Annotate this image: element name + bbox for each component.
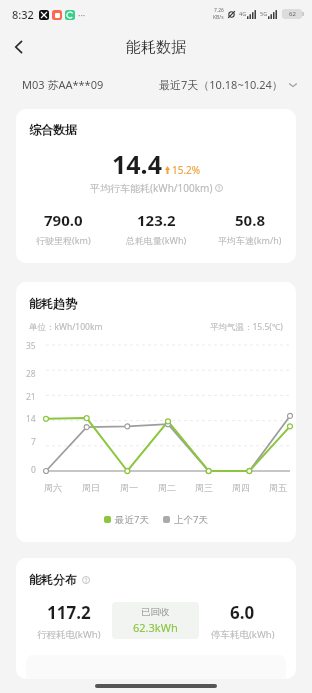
- staticText: 5G: [260, 10, 268, 17]
- staticText: 已回收: [141, 606, 170, 618]
- staticText: 35: [26, 340, 36, 352]
- button[interactable]: 最近7天（10.18~10.24）: [159, 77, 298, 92]
- staticText: 周二: [158, 482, 176, 493]
- staticText: 4G: [239, 10, 247, 17]
- button[interactable]: M03 苏AA***09: [22, 77, 104, 92]
- staticText: 能耗数据: [126, 38, 186, 57]
- staticText: 28: [26, 368, 36, 380]
- staticText: 周五: [269, 482, 287, 493]
- staticText: 能耗趋势: [29, 296, 77, 311]
- staticText: 单位：kWh/100km: [29, 321, 103, 333]
- staticText: 50.8: [235, 210, 265, 230]
- staticText: 7: [31, 436, 36, 448]
- staticText: 最近7天（10.18~10.24）: [159, 77, 283, 92]
- staticText: 21: [26, 391, 36, 403]
- button[interactable]: Back: [0, 28, 38, 66]
- staticText: 周六: [44, 482, 62, 493]
- staticText: 周四: [232, 482, 250, 493]
- staticText: 最近7天: [115, 513, 149, 526]
- staticText: 8:32: [12, 7, 34, 22]
- staticText: 15.2%: [172, 163, 201, 177]
- button[interactable]: 50.8: [203, 210, 296, 246]
- staticText: 62.3kWh: [133, 620, 178, 635]
- staticText: 62: [289, 10, 296, 18]
- staticText: 行程耗电(kWh): [37, 628, 101, 641]
- staticText: 790.0: [44, 210, 83, 230]
- staticText: ···: [78, 9, 86, 21]
- staticText: 平均车速(km/h): [218, 234, 282, 246]
- button[interactable]: 123.2: [110, 210, 203, 246]
- staticText: 7.26: [214, 7, 224, 14]
- staticText: 6.0: [230, 601, 255, 624]
- staticText: 周三: [195, 482, 213, 493]
- staticText: M03 苏AA***09: [22, 77, 104, 92]
- staticText: 平均气温：15.5(℃): [210, 321, 283, 333]
- staticText: 停车耗电(kWh): [211, 628, 275, 641]
- staticText: 能耗分布: [29, 572, 77, 587]
- button[interactable]: 最近7天: [104, 513, 149, 526]
- staticText: 14: [26, 413, 36, 425]
- staticText: 117.2: [47, 601, 91, 624]
- staticText: 平均行车能耗(kWh/100km): [90, 181, 213, 195]
- button[interactable]: 上个7天: [163, 513, 208, 526]
- staticText: 14.4: [112, 147, 162, 181]
- staticText: KB/s: [213, 14, 224, 21]
- staticText: 行驶里程(km): [36, 234, 91, 246]
- staticText: 综合数据: [29, 122, 77, 137]
- staticText: 123.2: [137, 210, 176, 230]
- staticText: 上个7天: [174, 513, 208, 526]
- staticText: 周一: [120, 482, 138, 493]
- staticText: 周日: [82, 482, 100, 493]
- button[interactable]: 790.0: [16, 210, 110, 246]
- staticText: 总耗电量(kWh): [126, 234, 187, 246]
- staticText: 0: [31, 464, 36, 476]
